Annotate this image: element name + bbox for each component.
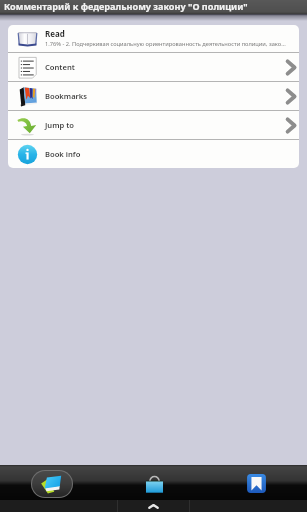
other: Home <box>147 503 160 510</box>
staticText: Комментарий к федеральному закону "О пол… <box>4 0 248 12</box>
button[interactable]: Jump to <box>8 111 299 139</box>
button[interactable]: Read <box>8 25 299 52</box>
button[interactable]: Bookmarks <box>8 82 299 110</box>
staticText: Content <box>45 62 285 72</box>
staticText: Jump to <box>45 120 285 130</box>
button[interactable]: Library <box>0 465 103 500</box>
button[interactable]: Book info <box>8 140 299 168</box>
staticText: Read <box>45 28 65 39</box>
staticText: Bookmarks <box>45 91 285 101</box>
button[interactable]: Bookmarks <box>205 465 307 500</box>
button[interactable]: Store <box>103 465 205 500</box>
staticText: Book info <box>45 149 299 159</box>
staticText: 1.76% - 2. Подчеркивая социальную ориент… <box>45 40 286 48</box>
button[interactable]: Content <box>8 53 299 81</box>
